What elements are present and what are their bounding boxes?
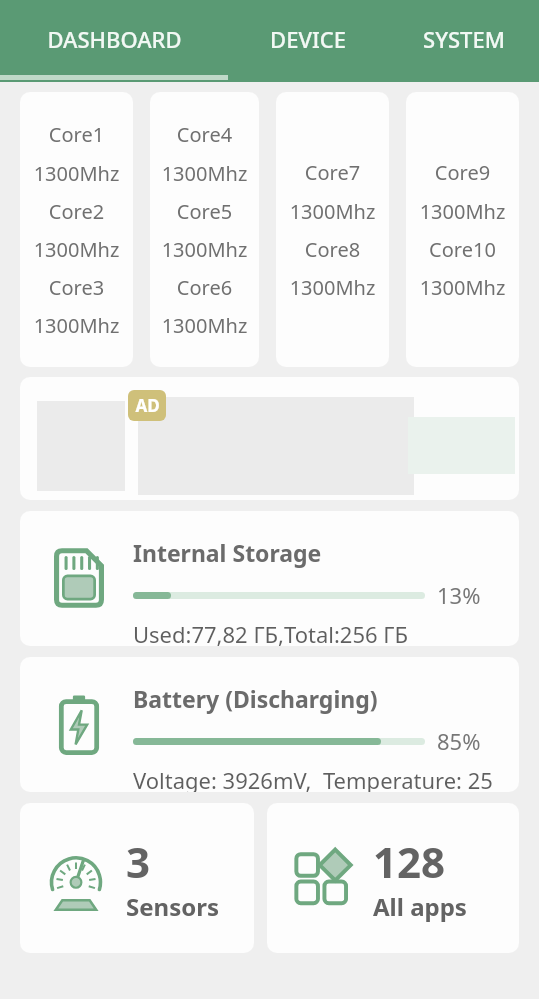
other: Battery (45, 690, 113, 758)
button[interactable]: DEVICE (228, 0, 388, 78)
staticText: Internal Storage (133, 537, 322, 568)
other: Sensors (40, 842, 112, 914)
staticText: 3 (126, 833, 151, 890)
staticText: 13% (437, 580, 481, 610)
staticText: DASHBOARD (47, 24, 182, 54)
button[interactable]: Core1 1300Mhz Core2 1300Mhz Core3 1300Mh… (20, 92, 133, 367)
staticText: 128 (373, 833, 446, 890)
button[interactable]: Internal storage (20, 511, 519, 646)
button[interactable]: AD (20, 377, 519, 500)
staticText: DEVICE (270, 24, 346, 54)
staticText: Used:77,82 ГБ,Total:256 ГБ (133, 619, 409, 646)
button[interactable]: SYSTEM (388, 0, 539, 78)
button[interactable]: DASHBOARD (0, 0, 228, 78)
staticText: Core4 1300Mhz Core5 1300Mhz Core6 1300Mh… (150, 121, 259, 339)
other: All apps (287, 842, 359, 914)
staticText: All apps (373, 890, 467, 923)
staticText: AD (135, 394, 160, 417)
staticText: Battery (Discharging) (133, 683, 378, 714)
staticText: 85% (437, 726, 481, 756)
button[interactable]: Sensors (20, 803, 254, 953)
staticText: Core1 1300Mhz Core2 1300Mhz Core3 1300Mh… (20, 121, 133, 339)
staticText: Sensors (126, 890, 219, 923)
staticText: Core9 1300Mhz Core10 1300Mhz (406, 159, 519, 301)
staticText: Voltage: 3926mV, Temperature: 25 (133, 765, 493, 792)
staticText: Core7 1300Mhz Core8 1300Mhz (276, 159, 389, 301)
button[interactable]: All apps (267, 803, 519, 953)
other: Internal storage (45, 544, 113, 612)
button[interactable]: Core4 1300Mhz Core5 1300Mhz Core6 1300Mh… (150, 92, 259, 367)
button[interactable]: Core7 1300Mhz Core8 1300Mhz (276, 92, 389, 367)
button[interactable]: Battery (20, 657, 519, 792)
button[interactable]: Core9 1300Mhz Core10 1300Mhz (406, 92, 519, 367)
staticText: SYSTEM (423, 24, 505, 54)
